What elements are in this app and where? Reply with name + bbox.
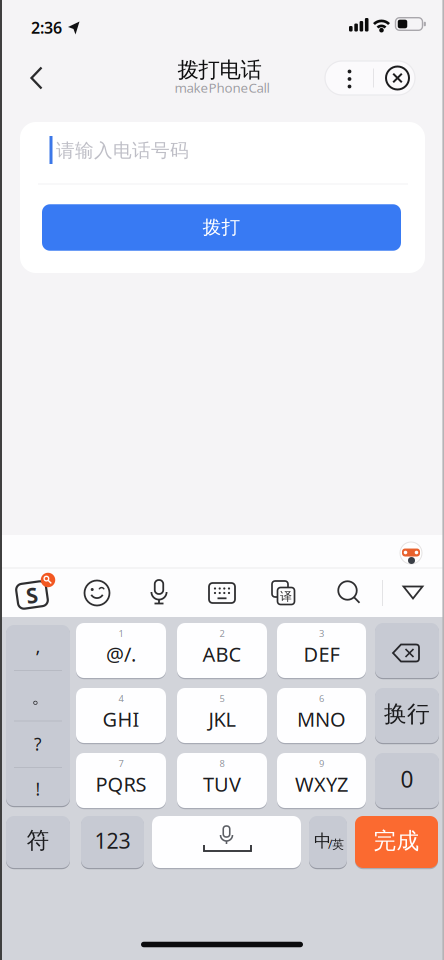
button[interactable]: 3	[277, 623, 366, 678]
staticText: 换行	[384, 700, 430, 728]
staticText: PQRS	[95, 771, 146, 797]
staticText: makePhoneCall	[174, 79, 269, 96]
button[interactable]: Back	[20, 58, 54, 98]
staticText: 2:36	[31, 17, 62, 38]
button[interactable]: 完成	[355, 816, 438, 868]
button[interactable]: 6	[277, 688, 366, 743]
staticText: !	[35, 777, 40, 800]
button[interactable]: 0	[375, 753, 439, 808]
staticText: ,	[35, 634, 40, 658]
staticText: 6	[319, 692, 324, 705]
staticText: 中	[314, 830, 331, 852]
staticText: 符	[26, 827, 49, 854]
staticText: 拨打	[202, 216, 240, 239]
button[interactable]: Punctuation	[6, 625, 70, 806]
button[interactable]: 9	[277, 753, 366, 808]
button[interactable]: 1	[76, 623, 166, 678]
staticText: 7	[118, 757, 123, 770]
staticText: 123	[94, 826, 130, 855]
button[interactable]: Space	[152, 816, 301, 868]
button[interactable]: 换行	[375, 688, 439, 743]
button[interactable]: 拨打	[42, 204, 401, 251]
staticText: /英	[328, 836, 344, 852]
button[interactable]: 7	[76, 753, 166, 808]
staticText: MNO	[297, 706, 346, 732]
button[interactable]: 4	[76, 688, 166, 743]
staticText: S	[26, 581, 38, 609]
staticText: JKL	[208, 706, 235, 732]
button[interactable]: Chinese/English	[309, 816, 347, 868]
button[interactable]: 5	[177, 688, 267, 743]
staticText: WXYZ	[295, 771, 348, 797]
button[interactable]: 符	[6, 816, 70, 868]
staticText: 9	[319, 757, 324, 770]
button[interactable]: 8	[177, 753, 267, 808]
staticText: GHI	[102, 706, 139, 732]
staticText: 8	[219, 757, 224, 770]
staticText: 4	[118, 692, 123, 705]
button[interactable]: Keyboard layout	[202, 573, 242, 613]
staticText: 2	[219, 627, 224, 640]
staticText: TUV	[203, 771, 241, 797]
staticText: 3	[319, 627, 324, 640]
button[interactable]: Translate	[263, 573, 303, 613]
button[interactable]: Delete	[375, 623, 439, 678]
button[interactable]: Emoji	[77, 573, 117, 613]
button[interactable]: Close	[373, 61, 415, 95]
staticText: 1	[118, 627, 123, 640]
staticText: 0	[400, 764, 413, 794]
staticText: ?	[34, 732, 42, 755]
button[interactable]: Hide keyboard	[395, 575, 431, 611]
staticText: ABC	[202, 641, 241, 667]
button[interactable]: More	[325, 61, 373, 95]
staticText: 请输入电话号码	[56, 139, 189, 162]
staticText: 拨打电话	[177, 57, 261, 83]
button[interactable]: Sogou	[10, 572, 58, 614]
staticText: 5	[219, 692, 224, 705]
button[interactable]: 123	[81, 816, 144, 868]
staticText: 译	[280, 589, 292, 604]
staticText: 。	[31, 685, 50, 708]
staticText: 完成	[373, 827, 419, 855]
button[interactable]: 2	[177, 623, 267, 678]
button[interactable]: Voice input	[139, 573, 179, 613]
staticText: @/.	[106, 641, 136, 667]
staticText: DEF	[303, 641, 339, 667]
button[interactable]: Search	[330, 573, 370, 613]
